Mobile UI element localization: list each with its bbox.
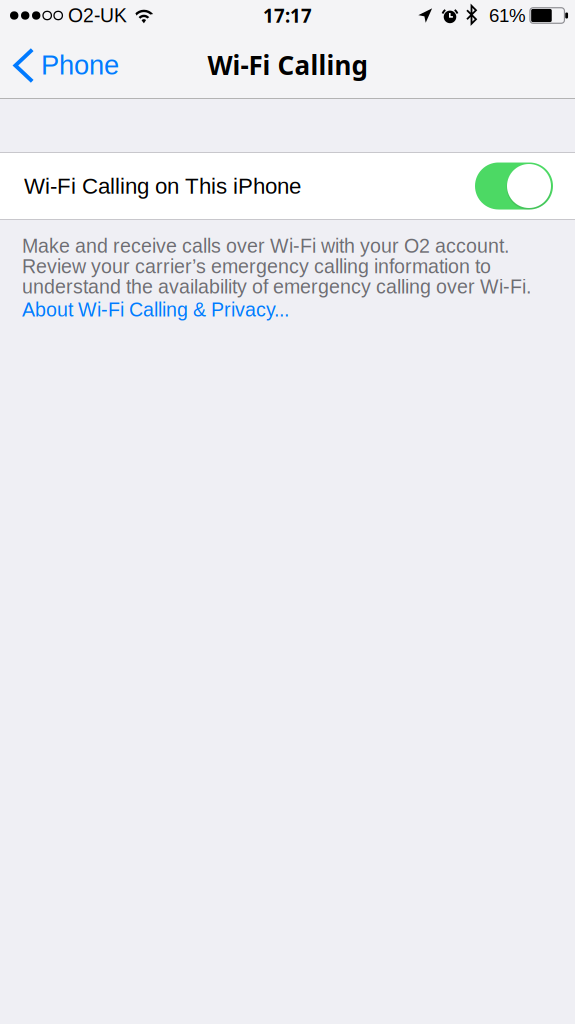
staticText: 17:17 [263, 3, 312, 28]
button[interactable]: Wi-Fi Calling on This iPhone [0, 153, 575, 219]
staticText: Make and receive calls over Wi-Fi with y… [22, 235, 531, 298]
button[interactable]: About Wi-Fi Calling & Privacy... [22, 298, 289, 321]
staticText: 61% [489, 5, 526, 26]
staticText: Phone [41, 50, 119, 80]
button[interactable]: Phone [0, 40, 129, 96]
staticText: About Wi-Fi Calling & Privacy... [22, 299, 289, 321]
staticText: Wi-Fi Calling [207, 47, 367, 83]
staticText: Wi-Fi Calling on This iPhone [24, 174, 301, 198]
staticText: O2-UK [68, 5, 127, 26]
